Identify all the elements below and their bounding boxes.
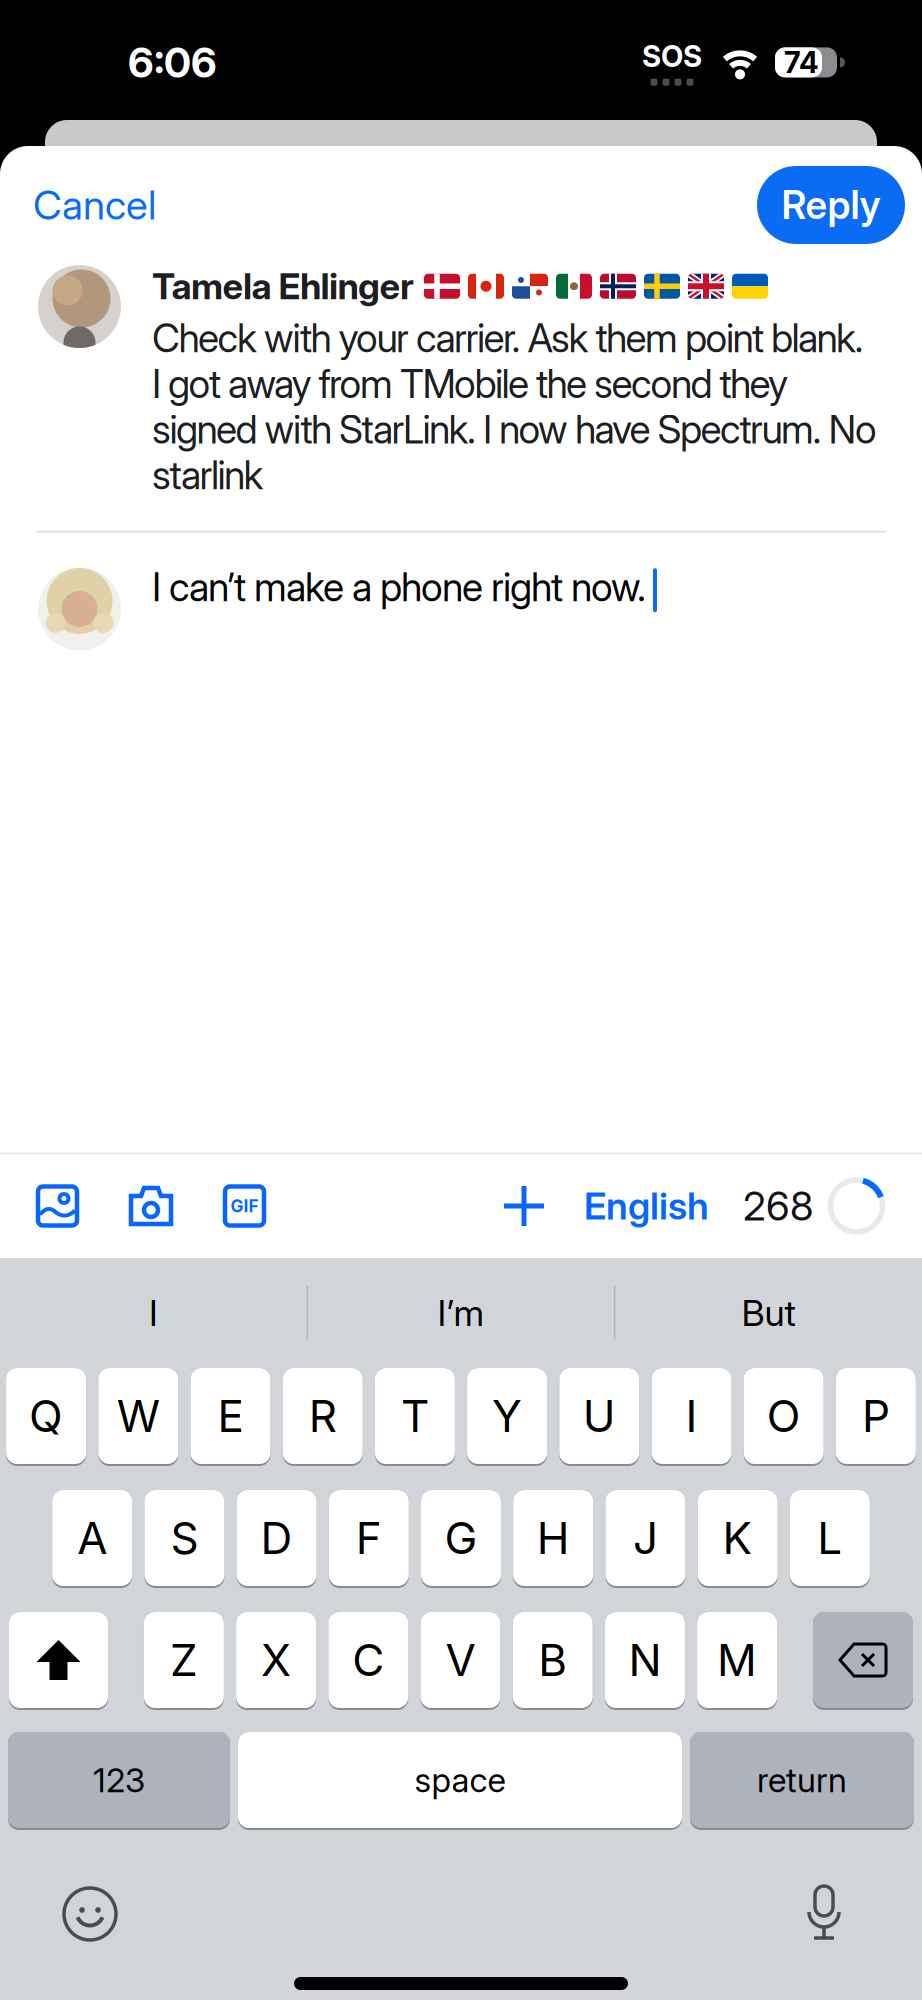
staticText: G [444,1512,477,1564]
button[interactable]: R [283,1368,363,1466]
staticText: Q [29,1390,63,1442]
button[interactable]: 123 [8,1732,230,1830]
staticText: 6:06 [128,38,217,87]
staticText: W [117,1390,160,1442]
staticText: 123 [93,1760,145,1800]
staticText: I’m [437,1292,484,1334]
button[interactable]: Z [144,1612,224,1710]
button[interactable]: I’m [308,1292,614,1334]
staticText: C [352,1634,384,1686]
staticText: Reply [781,182,880,228]
button[interactable]: More options [504,1186,544,1226]
staticText: Z [170,1634,198,1686]
staticText: V [445,1634,475,1686]
staticText: GIF [230,1196,258,1216]
button[interactable]: U [559,1368,639,1466]
button[interactable]: Add GIF [173,1186,264,1225]
staticText: I [149,1292,158,1334]
staticText: O [767,1390,801,1442]
button[interactable]: D [237,1490,317,1588]
staticText: S [170,1512,198,1564]
button[interactable]: H [513,1490,593,1588]
staticText: I [685,1390,697,1442]
button[interactable]: Emoji [0,1888,116,1940]
button[interactable]: space [238,1732,682,1830]
staticText: X [261,1634,291,1686]
staticText: K [723,1512,753,1564]
staticText: space [414,1760,505,1800]
button[interactable]: P [836,1368,916,1466]
staticText: P [862,1390,890,1442]
button[interactable]: Y [467,1368,547,1466]
button[interactable]: V [420,1612,500,1710]
button[interactable]: W [98,1368,178,1466]
staticText: Tamela Ehlinger [152,265,414,307]
button[interactable]: I [651,1368,731,1466]
button[interactable]: Cancel [33,181,156,229]
staticText: U [583,1390,616,1442]
staticText: 74 [784,45,819,80]
button[interactable]: But [615,1292,921,1334]
staticText: 268 [743,1182,813,1230]
button[interactable]: M [697,1612,777,1710]
staticText: M [717,1634,757,1686]
staticText: L [817,1512,842,1564]
button[interactable]: C [328,1612,408,1710]
button[interactable]: return [690,1732,914,1830]
button[interactable]: S [144,1490,224,1588]
staticText: But [741,1292,795,1334]
staticText: English [584,1184,709,1228]
staticText: H [537,1512,570,1564]
button[interactable]: Add photo [38,1186,77,1225]
staticText: A [77,1512,107,1564]
button[interactable]: Q [6,1368,86,1466]
staticText: return [757,1760,847,1800]
staticText: I can’t make a phone right now. [152,564,646,610]
button[interactable]: L [790,1490,870,1588]
button[interactable]: G [421,1490,501,1588]
staticText: SOS [642,39,702,74]
staticText: Cancel [33,181,156,229]
button[interactable]: A [52,1490,132,1588]
button[interactable]: Shift [9,1612,108,1710]
button[interactable]: Take photo [77,1186,173,1226]
button[interactable]: Dictation [804,1886,922,1942]
button[interactable]: T [375,1368,455,1466]
button[interactable]: Delete [813,1612,913,1710]
staticText: Y [492,1390,522,1442]
staticText: Check with your carrier. Ask them point … [152,315,877,498]
button[interactable]: O [744,1368,824,1466]
button[interactable]: I [0,1292,306,1334]
button[interactable]: E [190,1368,270,1466]
staticText: D [261,1512,293,1564]
staticText: R [309,1390,337,1442]
button[interactable]: N [605,1612,685,1710]
button[interactable]: F [329,1490,409,1588]
staticText: T [401,1390,429,1442]
button[interactable]: K [698,1490,778,1588]
button[interactable]: J [605,1490,685,1588]
staticText: J [633,1512,658,1564]
button[interactable]: B [513,1612,593,1710]
staticText: F [356,1512,382,1564]
button[interactable]: Reply [757,166,905,244]
staticText: E [217,1390,243,1442]
button[interactable]: X [236,1612,316,1710]
staticText: N [628,1634,661,1686]
staticText: B [538,1634,567,1686]
button[interactable]: English [544,1184,709,1228]
